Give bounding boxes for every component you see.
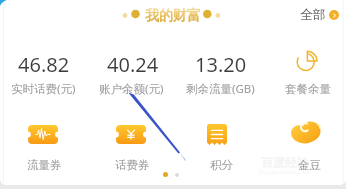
button[interactable]: 13.20 <box>195 51 247 73</box>
staticText: 13.20 <box>195 51 247 73</box>
other: 积分 <box>207 124 227 145</box>
other: 话费券 <box>116 125 146 144</box>
other: 金豆 <box>289 121 323 145</box>
staticText: 全部 <box>300 7 326 23</box>
button[interactable]: 全部 <box>300 7 339 23</box>
staticText: 积分 <box>210 158 233 172</box>
staticText: 金豆 <box>298 158 321 172</box>
other: 套餐余量 <box>296 51 320 75</box>
staticText: 剩余流量(GB) <box>186 81 255 97</box>
button[interactable]: 40.24 <box>107 51 159 73</box>
other: 流量券 <box>28 125 58 144</box>
staticText: 我的财富 <box>145 7 201 25</box>
staticText: 套餐余量 <box>285 82 331 96</box>
staticText: 实时话费(元) <box>11 81 76 97</box>
staticText: 46.82 <box>18 51 70 73</box>
button[interactable]: 46.82 <box>18 51 70 73</box>
staticText: 话费券 <box>115 158 150 172</box>
staticText: jingyan.baidu.com <box>258 168 310 176</box>
staticText: 百度经验 <box>261 155 309 170</box>
staticText: 流量券 <box>27 158 62 172</box>
staticText: 账户余额(元) <box>99 81 164 97</box>
staticText: 40.24 <box>107 51 159 73</box>
